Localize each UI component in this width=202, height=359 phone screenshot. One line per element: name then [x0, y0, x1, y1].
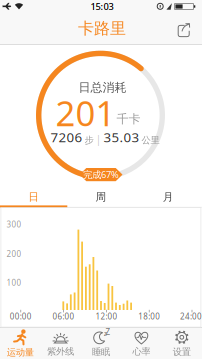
- staticText: 月: [163, 190, 174, 203]
- button[interactable]: 心率: [121, 328, 162, 358]
- button[interactable]: 周: [67, 188, 134, 205]
- staticText: 200: [6, 248, 21, 259]
- button[interactable]: 设置: [162, 328, 202, 358]
- staticText: 卡路里: [78, 19, 126, 38]
- staticText: 日总消耗: [78, 80, 126, 95]
- staticText: 00:00: [10, 311, 32, 322]
- staticText: 千卡: [116, 112, 140, 126]
- staticText: 完成67%: [83, 168, 119, 181]
- button[interactable]: [172, 17, 196, 41]
- staticText: 35.03: [103, 128, 139, 146]
- staticText: 7206: [50, 128, 82, 146]
- button[interactable]: 运动量: [0, 328, 40, 358]
- staticText: Z: [105, 327, 110, 337]
- staticText: |: [95, 132, 101, 146]
- staticText: 24:00: [180, 311, 202, 322]
- staticText: 睡眠: [92, 346, 110, 358]
- button[interactable]: 月: [135, 188, 202, 205]
- staticText: 设置: [173, 346, 191, 358]
- button[interactable]: 日: [0, 188, 67, 205]
- staticText: 15:03: [90, 0, 113, 13]
- staticText: 300: [6, 219, 21, 230]
- staticText: 06:00: [52, 311, 74, 322]
- staticText: 201: [55, 90, 115, 136]
- staticText: 公里: [141, 134, 159, 146]
- button[interactable]: z: [81, 328, 121, 358]
- staticText: 100: [6, 277, 21, 288]
- staticText: 运动量: [7, 347, 34, 358]
- button[interactable]: 紫外线: [40, 328, 81, 358]
- staticText: 周: [95, 190, 106, 203]
- staticText: 心率: [132, 346, 150, 357]
- staticText: z: [104, 329, 107, 338]
- staticText: 步: [84, 134, 93, 146]
- staticText: 紫外线: [47, 346, 74, 357]
- staticText: 18:00: [138, 311, 160, 322]
- staticText: 日: [28, 190, 39, 203]
- staticText: 12:00: [95, 311, 117, 322]
